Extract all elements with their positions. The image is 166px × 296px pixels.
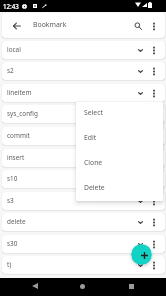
staticText: commit (7, 131, 30, 140)
staticText: Clone (84, 158, 103, 167)
button[interactable]: s3 (2, 192, 165, 210)
button[interactable]: Clone (76, 152, 163, 177)
button[interactable]: Expand (134, 259, 146, 271)
button[interactable]: Add (131, 244, 152, 265)
button[interactable]: Expand (134, 44, 146, 56)
button[interactable]: delete (2, 213, 165, 231)
staticText: Bookmark (33, 20, 67, 29)
button[interactable]: Row options (148, 195, 160, 207)
button[interactable]: Edit (76, 127, 163, 152)
staticText: insert (7, 153, 25, 162)
button[interactable]: s10 (2, 170, 165, 188)
button[interactable]: Row options (148, 65, 160, 77)
staticText: lineitem (7, 88, 32, 97)
button[interactable]: Expand (134, 65, 146, 77)
button[interactable]: Back (28, 279, 42, 293)
button[interactable]: Expand (134, 216, 146, 228)
button[interactable]: Row options (148, 87, 160, 99)
staticText: Delete (84, 183, 105, 192)
button[interactable]: Back (10, 19, 23, 32)
button[interactable]: Recents (124, 279, 138, 293)
button[interactable]: Expand (134, 195, 146, 207)
button[interactable]: s30 (2, 235, 165, 253)
button[interactable]: t) (2, 256, 165, 274)
staticText: s2 (7, 66, 14, 75)
staticText: s10 (7, 174, 18, 183)
button[interactable]: Row options (148, 44, 160, 56)
staticText: Edit (84, 133, 97, 142)
button[interactable]: lineitem (2, 84, 165, 102)
staticText: s3 (7, 196, 14, 205)
staticText: sys_config (7, 109, 38, 118)
staticText: s30 (7, 239, 18, 248)
button[interactable]: s2 (2, 62, 165, 80)
button[interactable]: Delete (76, 177, 163, 201)
button[interactable]: Row options (148, 259, 160, 271)
button[interactable]: Row options (148, 216, 160, 228)
button[interactable]: commit (2, 127, 165, 145)
button[interactable]: insert (2, 149, 165, 167)
button[interactable]: Select (76, 102, 163, 127)
button[interactable]: Search (131, 19, 145, 33)
button[interactable]: local (2, 41, 165, 59)
staticText: t) (7, 260, 12, 269)
button[interactable]: Row options (148, 238, 160, 250)
button[interactable]: sys_config (2, 105, 165, 123)
button[interactable]: Home (75, 279, 89, 293)
staticText: 12:43 (3, 2, 19, 10)
staticText: local (7, 45, 21, 54)
button[interactable]: Expand (134, 87, 146, 99)
button[interactable]: Expand (134, 238, 146, 250)
staticText: delete (7, 217, 26, 226)
staticText: Select (84, 108, 103, 117)
button[interactable]: More options (147, 19, 161, 33)
